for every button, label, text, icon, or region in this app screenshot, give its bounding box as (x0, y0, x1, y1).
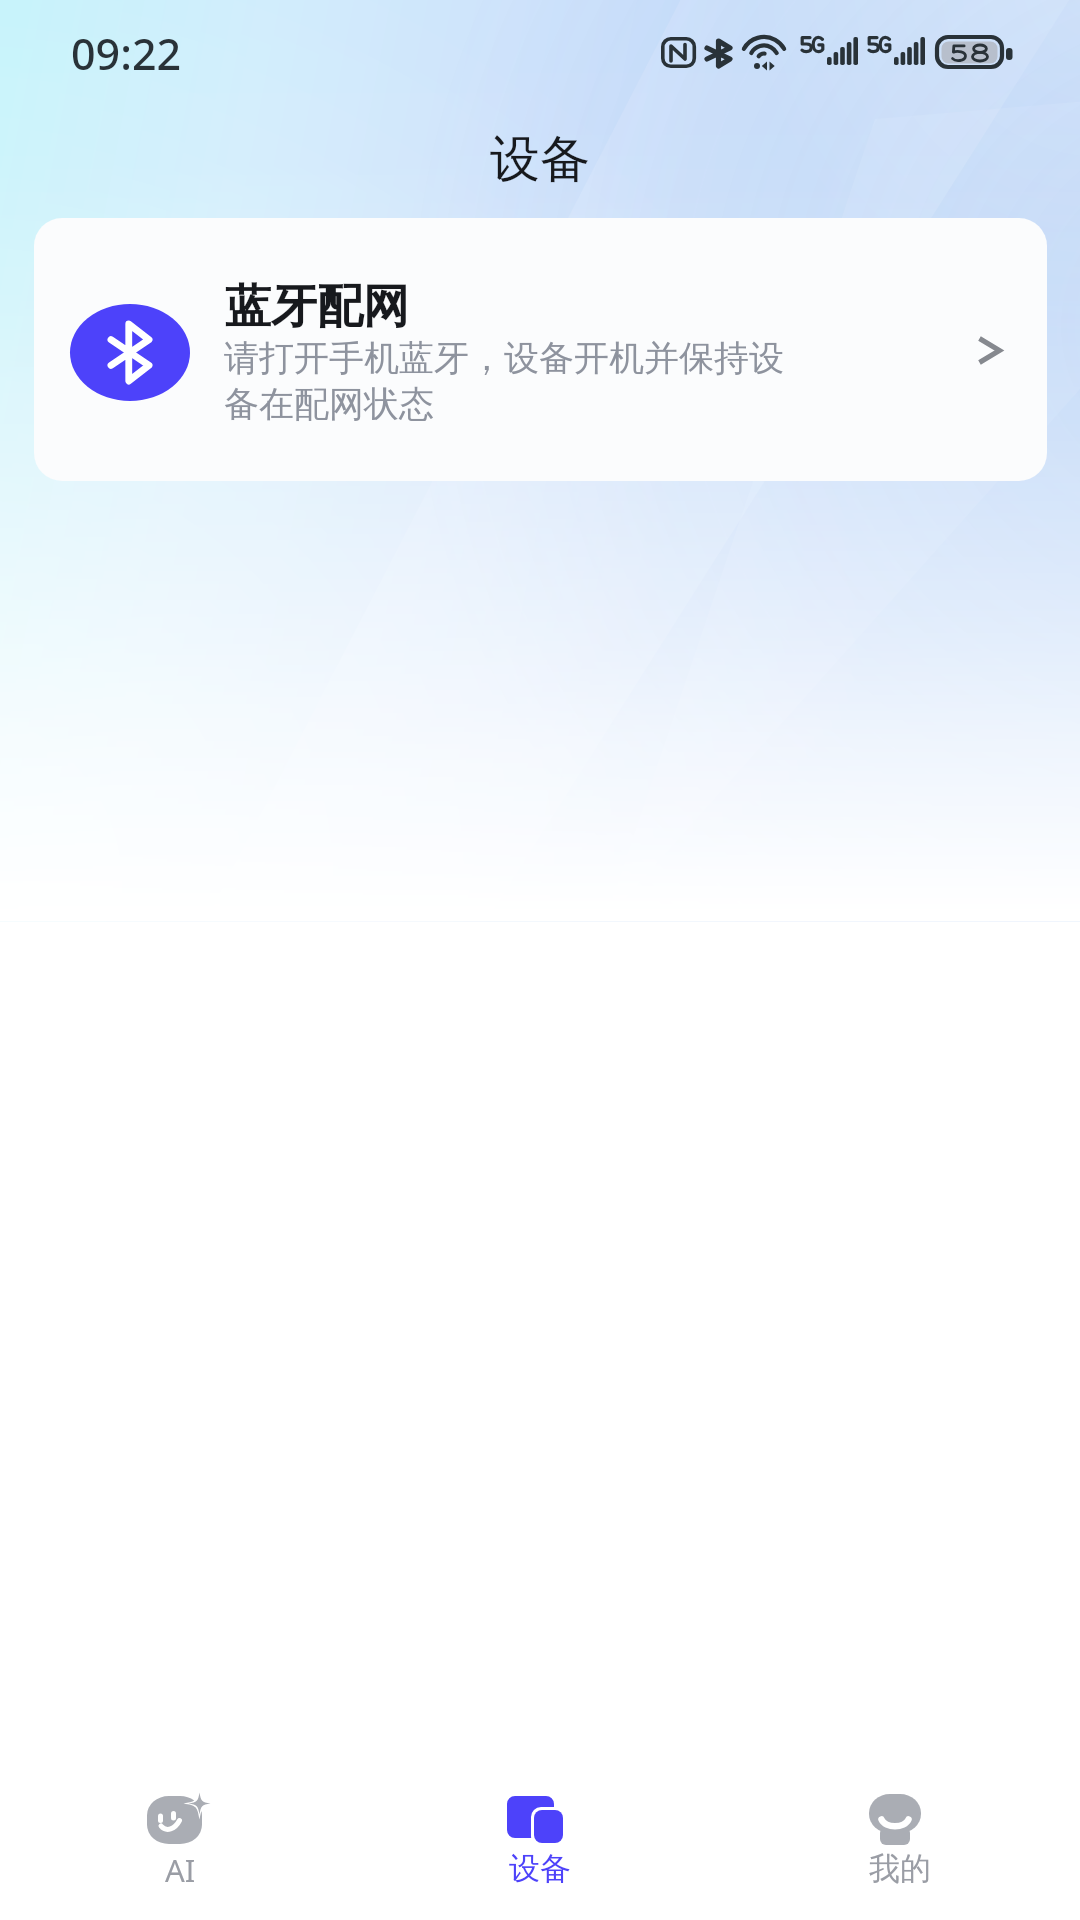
staticText: 备在配网状态 (224, 382, 434, 426)
button[interactable]: AI 助手 (60, 1760, 300, 1891)
staticText: AI (165, 1849, 196, 1891)
other: AI 助手 (147, 1794, 213, 1848)
button[interactable]: 设备 (420, 1760, 660, 1888)
staticText: 我的 (869, 1849, 931, 1888)
staticText: 设备 (509, 1849, 571, 1888)
staticText: 设备 (490, 128, 590, 191)
other: 进入 (977, 336, 1002, 365)
button[interactable]: 我的 (780, 1760, 1020, 1888)
staticText: 蓝牙配网 (225, 278, 409, 336)
button[interactable]: 蓝牙配网 (34, 218, 1047, 481)
other: 我的 (867, 1794, 933, 1848)
staticText: 09:22 (71, 24, 182, 83)
other: 设备 (507, 1794, 573, 1848)
staticText: 请打开手机蓝牙，设备开机并保持设 (224, 336, 784, 380)
